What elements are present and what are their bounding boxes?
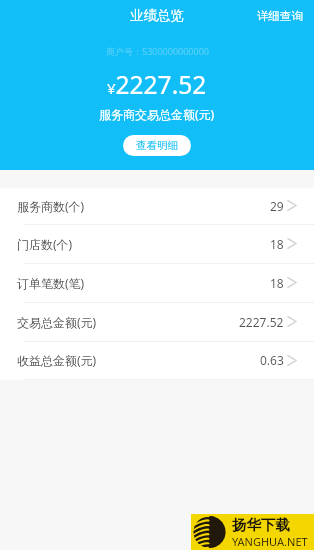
staticText: 商户号：5300000000000 [106, 45, 209, 57]
staticText: 0.63 [260, 352, 284, 368]
button[interactable]: 收益总金额(元) [0, 342, 314, 380]
staticText: 交易总金额(元) [17, 314, 97, 330]
staticText: 18 [270, 236, 284, 252]
staticText: 29 [270, 198, 284, 214]
staticText: 查看明细 [136, 139, 178, 152]
staticText: 扬华下载 [232, 516, 290, 534]
staticText: 18 [270, 275, 284, 291]
button[interactable]: 交易总金额(元) [0, 303, 314, 342]
button[interactable]: 订单笔数(笔) [0, 264, 314, 303]
staticText: 业绩总览 [130, 7, 184, 24]
staticText: 详细查询 [257, 9, 303, 23]
staticText: 服务商交易总金额(元) [99, 106, 215, 122]
staticText: 收益总金额(元) [17, 352, 97, 368]
button[interactable]: 服务商数(个) [0, 188, 314, 225]
staticText: 服务商数(个) [17, 198, 85, 214]
staticText: 2227.52 [239, 314, 284, 330]
staticText: 订单笔数(笔) [17, 275, 85, 291]
staticText: 门店数(个) [17, 236, 73, 252]
staticText: YANGHUA.NET [232, 534, 308, 549]
button[interactable]: 详细查询 [246, 3, 314, 29]
staticText: ¥2227.52 [107, 68, 207, 101]
button[interactable]: 查看明细 [123, 135, 191, 156]
button[interactable]: 门店数(个) [0, 225, 314, 264]
